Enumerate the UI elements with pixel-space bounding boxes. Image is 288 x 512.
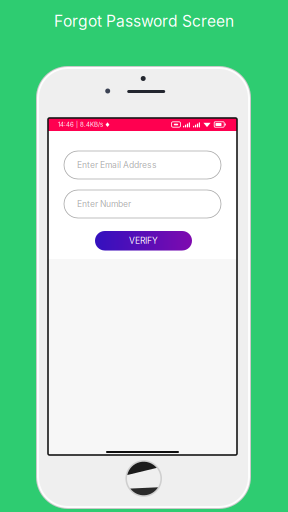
button[interactable]: VERIFY: [95, 231, 192, 250]
staticText: Enter Number: [77, 199, 131, 209]
staticText: VERIFY: [129, 236, 158, 246]
staticText: Enter Email Address: [77, 160, 157, 170]
staticText: 14:46 | 8.4KB/s: [58, 121, 103, 128]
staticText: Forgot Password Screen: [54, 12, 234, 30]
